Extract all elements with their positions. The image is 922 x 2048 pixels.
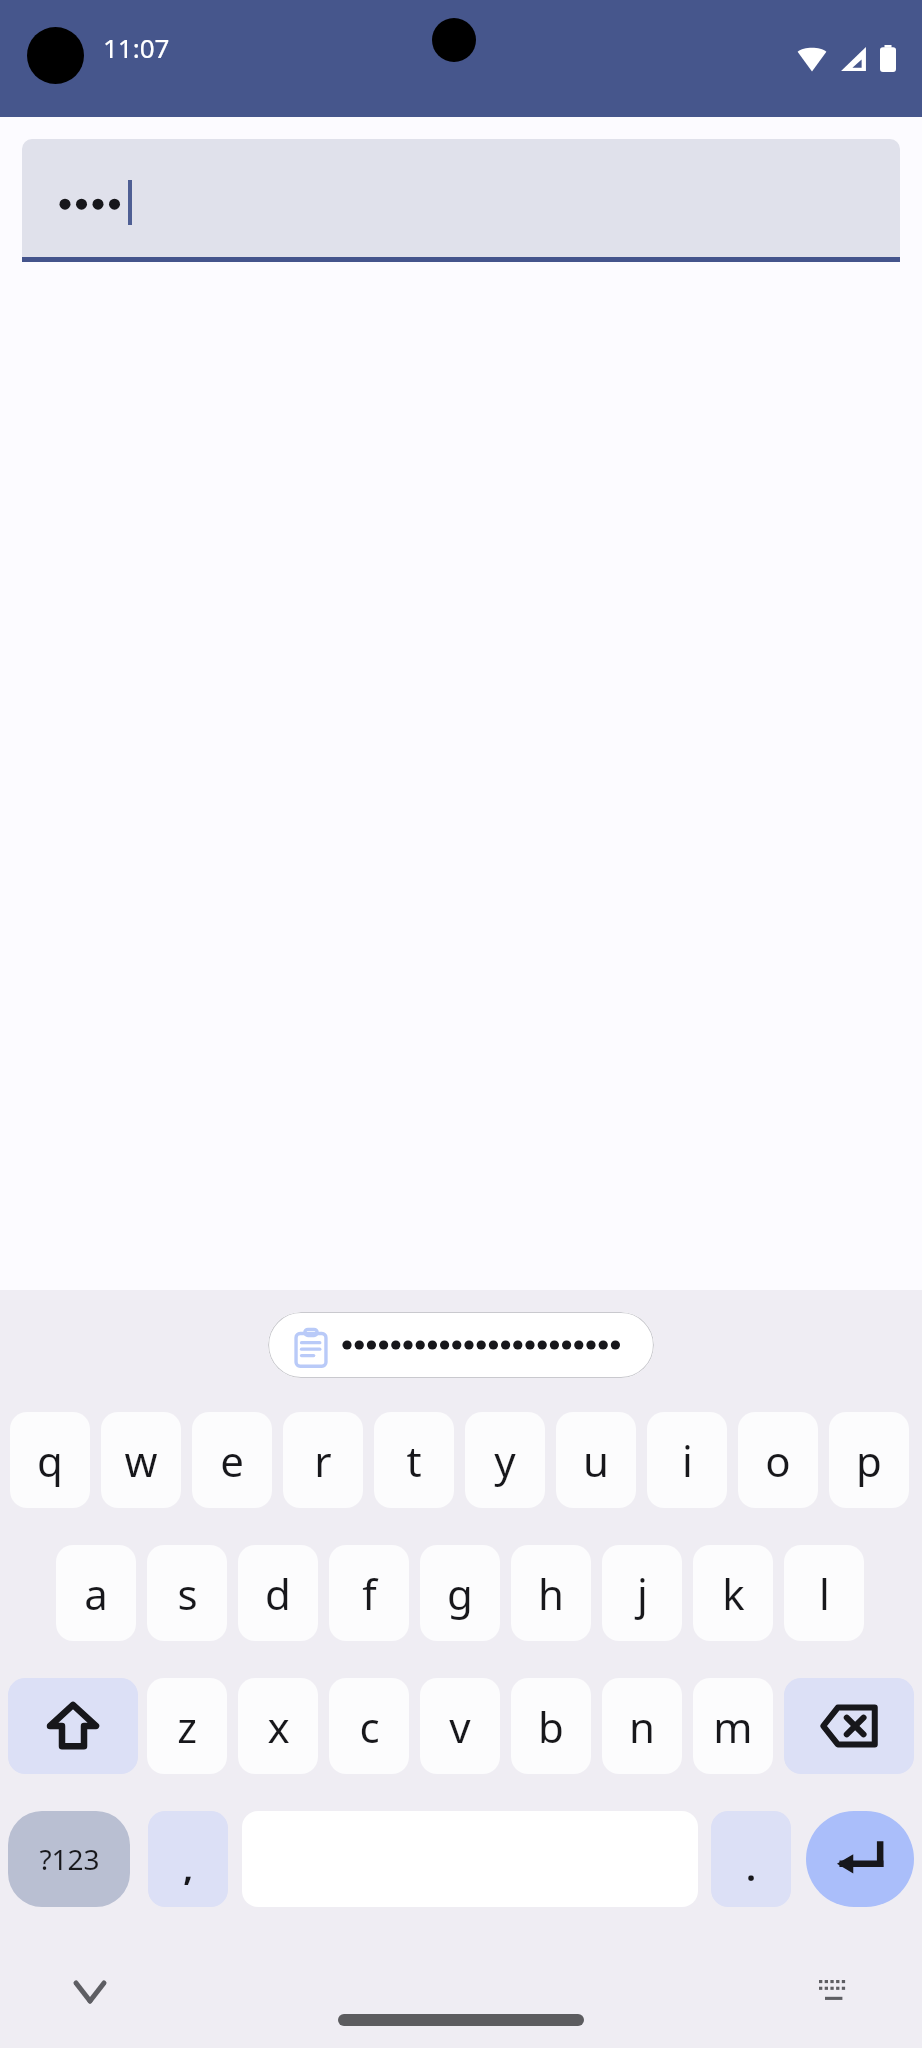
staticText: u	[583, 1432, 609, 1489]
button[interactable]: f	[329, 1545, 409, 1641]
button[interactable]: u	[556, 1412, 636, 1508]
staticText: t	[406, 1432, 422, 1489]
button[interactable]: v	[420, 1678, 500, 1774]
staticText: ?123	[39, 1840, 100, 1878]
staticText: c	[359, 1698, 380, 1755]
staticText: n	[629, 1698, 655, 1755]
staticText: .	[746, 1845, 756, 1891]
button[interactable]: e	[192, 1412, 272, 1508]
staticText: g	[447, 1565, 473, 1622]
staticText: d	[265, 1565, 291, 1622]
staticText: h	[538, 1565, 564, 1622]
button[interactable]: ?123	[8, 1811, 130, 1907]
staticText: s	[177, 1565, 198, 1622]
staticText: q	[37, 1432, 63, 1489]
staticText: x	[267, 1698, 290, 1755]
staticText: f	[362, 1565, 377, 1622]
button[interactable]: Hide keyboard	[56, 1958, 124, 2026]
staticText: p	[856, 1432, 882, 1489]
staticText: b	[538, 1698, 564, 1755]
staticText: ,	[183, 1845, 193, 1891]
button[interactable]: y	[465, 1412, 545, 1508]
button[interactable]: k	[693, 1545, 773, 1641]
button[interactable]: Enter	[806, 1811, 914, 1907]
staticText: e	[220, 1432, 244, 1489]
button[interactable]: p	[829, 1412, 909, 1508]
staticText: w	[124, 1432, 158, 1489]
button[interactable]: h	[511, 1545, 591, 1641]
button[interactable]: z	[147, 1678, 227, 1774]
button[interactable]: l	[784, 1545, 864, 1641]
button[interactable]: Backspace	[784, 1678, 914, 1774]
button[interactable]: c	[329, 1678, 409, 1774]
staticText: k	[722, 1565, 745, 1622]
button[interactable]: Switch keyboard	[800, 1958, 868, 2026]
button[interactable]: a	[56, 1545, 136, 1641]
staticText: j	[637, 1565, 648, 1622]
button[interactable]: g	[420, 1545, 500, 1641]
button[interactable]: i	[647, 1412, 727, 1508]
button[interactable]: d	[238, 1545, 318, 1641]
button[interactable]: q	[10, 1412, 90, 1508]
staticText: z	[177, 1698, 197, 1755]
button[interactable]: r	[283, 1412, 363, 1508]
staticText: i	[682, 1432, 693, 1489]
staticText: m	[713, 1698, 753, 1755]
button[interactable]: b	[511, 1678, 591, 1774]
button[interactable]: .	[711, 1811, 791, 1907]
staticText: r	[314, 1432, 332, 1489]
button[interactable]: Shift	[8, 1678, 138, 1774]
button[interactable]: o	[738, 1412, 818, 1508]
button[interactable]	[268, 1312, 654, 1378]
staticText: o	[765, 1432, 791, 1489]
button[interactable]: m	[693, 1678, 773, 1774]
button[interactable]: x	[238, 1678, 318, 1774]
staticText: v	[449, 1698, 471, 1755]
staticText: 11:07	[103, 30, 170, 65]
button[interactable]: s	[147, 1545, 227, 1641]
button[interactable]: n	[602, 1678, 682, 1774]
button[interactable]: t	[374, 1412, 454, 1508]
staticText: y	[494, 1432, 516, 1489]
staticText: a	[84, 1565, 108, 1622]
button[interactable]: ,	[148, 1811, 228, 1907]
button[interactable]: w	[101, 1412, 181, 1508]
button[interactable]	[22, 139, 900, 262]
staticText: l	[819, 1565, 830, 1622]
button[interactable]: Home	[338, 2014, 584, 2026]
button[interactable]: j	[602, 1545, 682, 1641]
